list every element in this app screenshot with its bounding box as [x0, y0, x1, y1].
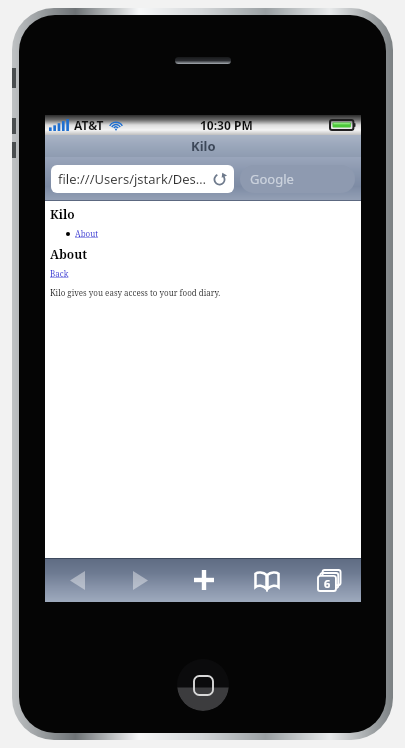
staticText: About	[50, 246, 88, 262]
button[interactable]: About	[75, 228, 99, 239]
button[interactable]: Back	[45, 558, 109, 602]
staticText: file:///Users/jstark/Des…	[58, 170, 207, 188]
button[interactable]: Forward	[109, 558, 172, 602]
button[interactable]: Home	[177, 659, 229, 711]
staticText: 10:30 PM	[200, 117, 253, 133]
staticText: Kilo gives you easy access to your food …	[50, 287, 221, 298]
button[interactable]: file:///Users/jstark/Des…	[51, 165, 234, 193]
button[interactable]: Google	[240, 165, 355, 193]
staticText: Kilo	[191, 137, 216, 155]
button[interactable]: Add bookmark	[172, 558, 235, 602]
staticText: AT&T	[74, 117, 104, 133]
staticText: 6	[324, 576, 331, 591]
staticText: Google	[250, 170, 294, 188]
staticText: Kilo	[50, 206, 75, 222]
button[interactable]: Pages, 6 open	[298, 558, 361, 602]
button[interactable]: Back	[50, 268, 69, 279]
button[interactable]: Bookmarks	[235, 558, 298, 602]
